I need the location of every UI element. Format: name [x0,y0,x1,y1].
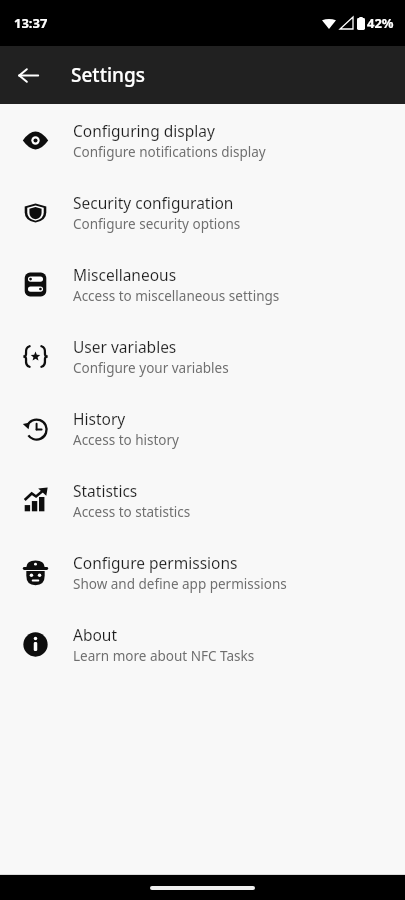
staticText: Miscellaneous [73,264,177,285]
staticText: Configure notifications display [73,143,266,161]
button[interactable]: History [0,392,405,464]
staticText: Show and define app permissions [73,575,287,593]
staticText: User variables [73,336,177,357]
staticText: 42% [367,14,394,32]
button[interactable]: Configuring display [0,104,405,176]
button[interactable]: About [0,608,405,680]
staticText: Access to statistics [73,503,191,521]
staticText: Statistics [73,480,138,501]
staticText: 13:37 [14,14,48,32]
staticText: Configure your variables [73,359,229,377]
button[interactable]: Security configuration [0,176,405,248]
button[interactable]: Statistics [0,464,405,536]
staticText: Settings [71,62,145,88]
staticText: Access to miscellaneous settings [73,287,280,305]
staticText: Configure security options [73,215,241,233]
button[interactable]: Back [8,55,48,95]
button[interactable]: User variables [0,320,405,392]
staticText: About [73,624,117,645]
staticText: Configure permissions [73,552,238,573]
staticText: Learn more about NFC Tasks [73,647,255,665]
staticText: Security configuration [73,192,234,213]
button[interactable]: Configure permissions [0,536,405,608]
button[interactable]: Home [150,886,255,890]
staticText: History [73,408,126,429]
button[interactable]: Miscellaneous [0,248,405,320]
staticText: Access to history [73,431,179,449]
staticText: Configuring display [73,120,215,141]
